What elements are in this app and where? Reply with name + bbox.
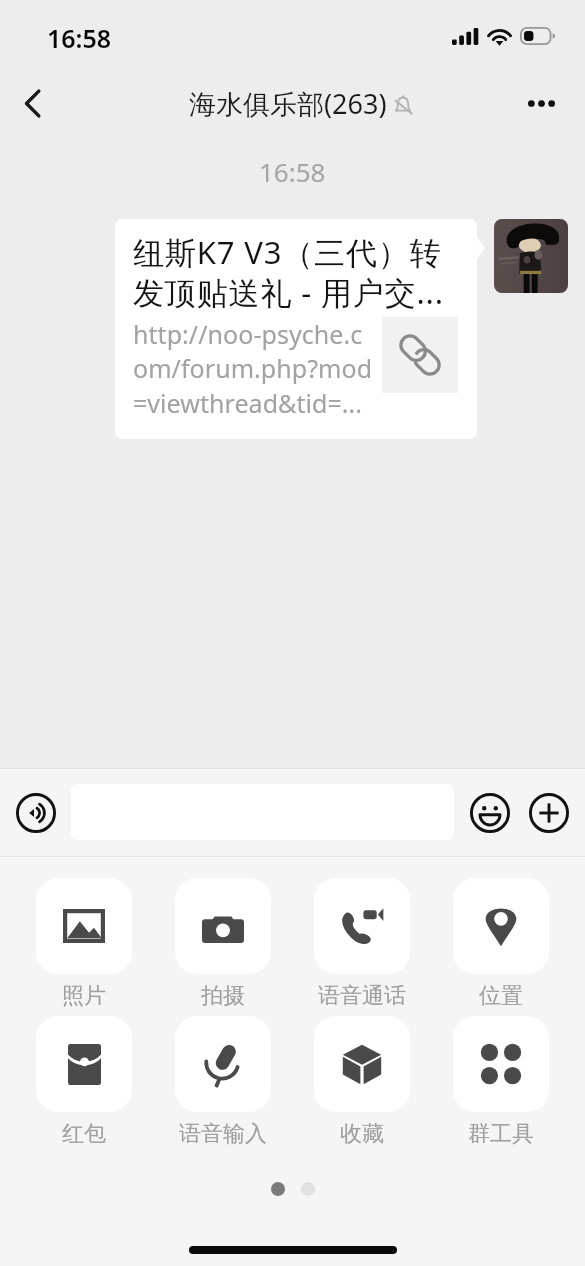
staticText: 语音输入 xyxy=(179,1120,267,1148)
button[interactable]: 语音通话 xyxy=(314,878,410,1010)
staticText: 16:58 xyxy=(259,154,326,189)
button[interactable]: Page 2 xyxy=(301,1182,315,1196)
button[interactable]: Page 1 xyxy=(271,1182,285,1196)
staticText: 收藏 xyxy=(340,1120,384,1148)
staticText: 拍摄 xyxy=(201,982,245,1010)
staticText: 群工具 xyxy=(468,1120,534,1148)
staticText: 红包 xyxy=(62,1120,106,1148)
button[interactable]: Voice message xyxy=(8,785,64,841)
button[interactable]: Back xyxy=(0,70,64,136)
button[interactable]: Link message: 纽斯K7 V3（三代）转发顶贴送礼 xyxy=(115,219,477,439)
staticText: 语音通话 xyxy=(318,982,406,1010)
button[interactable]: Emoji xyxy=(462,785,518,841)
staticText: 位置 xyxy=(479,982,523,1010)
button[interactable]: 拍摄 xyxy=(175,878,271,1010)
button[interactable]: More functions xyxy=(521,785,577,841)
staticText: 16:58 xyxy=(47,21,112,55)
button[interactable]: 红包 xyxy=(36,1016,132,1148)
button[interactable]: 位置 xyxy=(453,878,549,1010)
staticText: http://noo-psyche.c om/forum.php?mod =vi… xyxy=(133,317,373,421)
button[interactable]: Avatar xyxy=(494,219,568,293)
button[interactable]: 语音输入 xyxy=(175,1016,271,1148)
button[interactable]: 群工具 xyxy=(453,1016,549,1148)
staticText: 照片 xyxy=(62,982,106,1010)
button[interactable]: 收藏 xyxy=(314,1016,410,1148)
staticText: 纽斯K7 V3（三代）转 发顶贴送礼 - 用户交... xyxy=(133,231,444,313)
button[interactable]: More options xyxy=(510,70,572,136)
staticText: 海水俱乐部(263) xyxy=(189,85,387,122)
button[interactable]: 照片 xyxy=(36,878,132,1010)
